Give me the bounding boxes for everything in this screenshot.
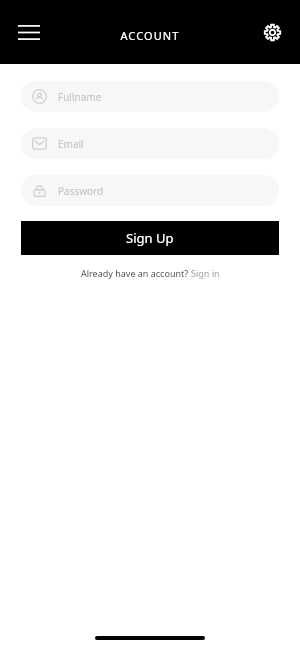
button[interactable]: Sign Up [21,221,279,255]
staticText: Sign in [191,267,220,279]
button[interactable]: Settings [253,13,291,51]
staticText: Email [58,137,84,151]
staticText: Sign Up [126,229,174,247]
button[interactable]: Sign in [191,267,220,279]
staticText: Already have an account? [81,267,191,279]
staticText: Password [58,184,104,198]
button[interactable]: Menu [9,12,49,52]
button[interactable]: Fullname [21,81,279,112]
staticText: ACCOUNT [120,28,180,43]
button[interactable]: Password [21,175,279,206]
button[interactable]: Email [21,128,279,159]
staticText: Fullname [58,90,102,104]
